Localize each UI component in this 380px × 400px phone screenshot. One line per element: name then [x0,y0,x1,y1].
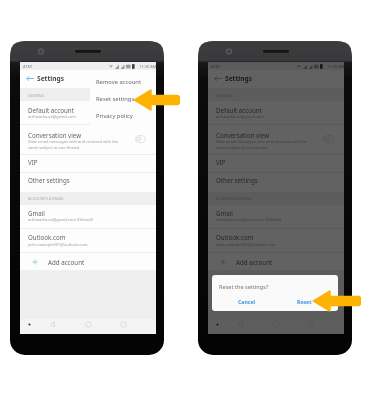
staticText: Reset settings [96,95,135,103]
staticText: Default account [216,106,262,114]
staticText: arthwarka.xa@gmail.com (Default) [216,217,282,222]
staticText: john.example001@outlook.com [28,242,88,247]
button[interactable]: Recents [120,321,127,328]
other: Pointer arrow [312,289,361,313]
button[interactable]: Remove account [90,73,156,90]
staticText: Outlook.com [28,233,66,241]
button[interactable]: Back [25,74,35,83]
button[interactable]: Back [237,321,244,328]
staticText: 11:30 AM [139,64,157,69]
staticText: GENERAL [28,93,45,98]
staticText: 11:30 AM [327,64,345,69]
staticText: Add account [48,258,85,266]
staticText: GENERAL [216,93,233,98]
staticText: ACCOUNTS & EMAIL [28,196,64,201]
staticText: Settings [225,74,253,83]
staticText: Settings [37,74,65,83]
staticText: same subject in one thread [216,145,267,150]
button[interactable]: Back [213,74,223,83]
staticText: Reset [297,298,312,305]
staticText: ACCOUNTS & EMAIL [216,196,252,201]
button[interactable]: Add account [208,253,344,270]
button[interactable]: Back [49,321,56,328]
staticText: arthwarka.xa@gmail.com [28,114,76,119]
staticText: Remove account [96,78,141,86]
staticText: Cancel [238,298,256,305]
staticText: arthwarka.xa@gmail.com (Default) [28,217,94,222]
button[interactable]: Reset settings [90,90,156,107]
staticText: AT&T [23,64,33,69]
staticText: Add account [236,258,273,266]
staticText: VIP [28,158,38,166]
staticText: Gmail [28,209,45,217]
button[interactable]: Privacy policy [90,107,156,124]
button[interactable]: Add account [20,253,156,270]
staticText: Conversation view [28,131,82,139]
staticText: View email messages sent and received wi… [28,139,119,144]
staticText: Outlook.com [216,233,254,241]
button[interactable]: Conversation view toggle [135,135,146,143]
staticText: VIP [216,158,226,166]
staticText: View email messages sent and received wi… [216,139,307,144]
staticText: Conversation view [216,131,270,139]
button[interactable]: Reset [294,297,315,306]
button[interactable]: Cancel [235,297,259,306]
staticText: Gmail [216,209,233,217]
staticText: Default account [28,106,74,114]
staticText: john.example001@outlook.com [216,242,276,247]
staticText: same subject in one thread [28,145,79,150]
button[interactable]: Conversation view toggle [323,135,334,143]
staticText: Privacy policy [96,112,133,120]
staticText: Reset the settings? [219,283,269,291]
other: Pointer arrow [133,88,180,112]
staticText: arthwarka.xa@gmail.com [216,114,264,119]
staticText: AT&T [211,64,221,69]
button[interactable]: Home [85,321,92,328]
staticText: Other settings [28,176,70,184]
staticText: Other settings [216,176,258,184]
